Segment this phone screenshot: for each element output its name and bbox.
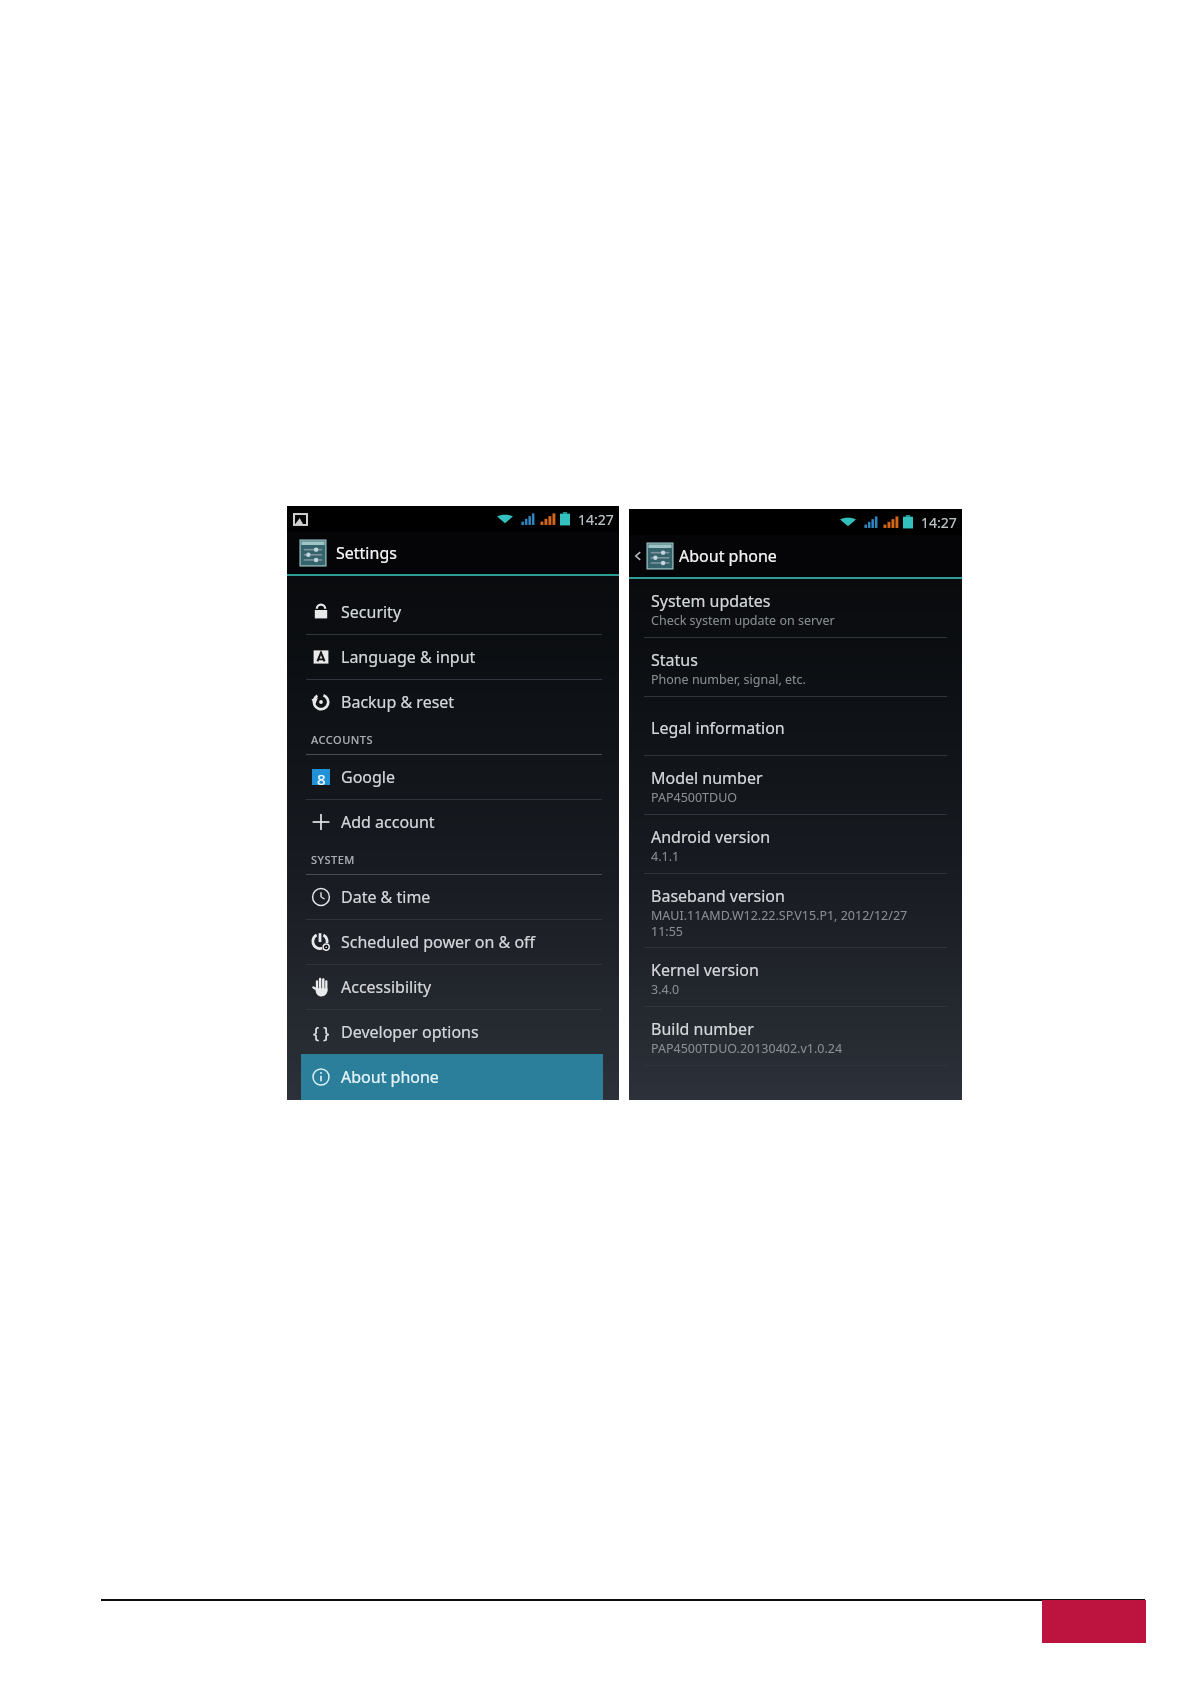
staticText: Status [651, 649, 698, 671]
button[interactable]: Backup & reset [287, 680, 619, 724]
staticText: Scheduled power on & off [341, 931, 536, 953]
staticText: 14:27 [921, 513, 957, 532]
button[interactable]: Android version [629, 815, 962, 873]
button[interactable]: About phone [301, 1054, 603, 1100]
button[interactable]: Date & time [287, 875, 619, 919]
button[interactable]: Security [287, 590, 619, 634]
staticText: PAP4500TDUO.20130402.v1.0.24 [651, 1040, 843, 1057]
button[interactable]: Accessibility [287, 965, 619, 1009]
staticText: Phone number, signal, etc. [651, 671, 806, 688]
staticText: 8 [317, 769, 326, 785]
staticText: Accessibility [341, 976, 432, 998]
staticText: MAUI.11AMD.W12.22.SP.V15.P1, 2012/12/27 … [651, 907, 908, 939]
button[interactable]: System updates [629, 579, 962, 637]
button[interactable]: Scheduled power on & off [287, 920, 619, 964]
staticText: Developer options [341, 1021, 479, 1043]
button[interactable]: Status [629, 638, 962, 696]
staticText: Settings [336, 542, 397, 564]
button[interactable]: Baseband version [629, 874, 962, 947]
staticText: Baseband version [651, 885, 785, 907]
button[interactable]: Legal information [629, 697, 962, 755]
staticText: SYSTEM [311, 852, 355, 867]
staticText: 14:27 [578, 510, 614, 529]
staticText: { } [313, 1022, 330, 1042]
staticText: Kernel version [651, 959, 759, 981]
staticText: Model number [651, 767, 763, 789]
staticText: Check system update on server [651, 612, 835, 629]
button[interactable]: Add account [287, 800, 619, 844]
staticText: Android version [651, 826, 771, 848]
button[interactable]: { } [287, 1010, 619, 1054]
button[interactable]: Back [629, 535, 962, 577]
button[interactable]: Back [633, 551, 643, 561]
staticText: Google [341, 766, 396, 788]
staticText: ACCOUNTS [311, 732, 374, 747]
staticText: Language & input [341, 646, 476, 668]
button[interactable]: Language & input [287, 635, 619, 679]
staticText: Build number [651, 1018, 754, 1040]
button[interactable]: 8 [287, 755, 619, 799]
button[interactable]: Settings [287, 532, 619, 574]
staticText: About phone [679, 545, 777, 567]
staticText: System updates [651, 590, 771, 612]
staticText: 3.4.0 [651, 981, 680, 998]
staticText: 4.1.1 [651, 848, 680, 865]
staticText: Date & time [341, 886, 431, 908]
staticText: About phone [341, 1066, 439, 1088]
staticText: Add account [341, 811, 435, 833]
button[interactable]: Model number [629, 756, 962, 814]
button[interactable]: Kernel version [629, 948, 962, 1006]
staticText: Backup & reset [341, 691, 455, 713]
staticText: Legal information [651, 717, 785, 739]
staticText: PAP4500TDUO [651, 789, 738, 806]
staticText: Security [341, 601, 402, 623]
button[interactable]: Build number [629, 1007, 962, 1065]
